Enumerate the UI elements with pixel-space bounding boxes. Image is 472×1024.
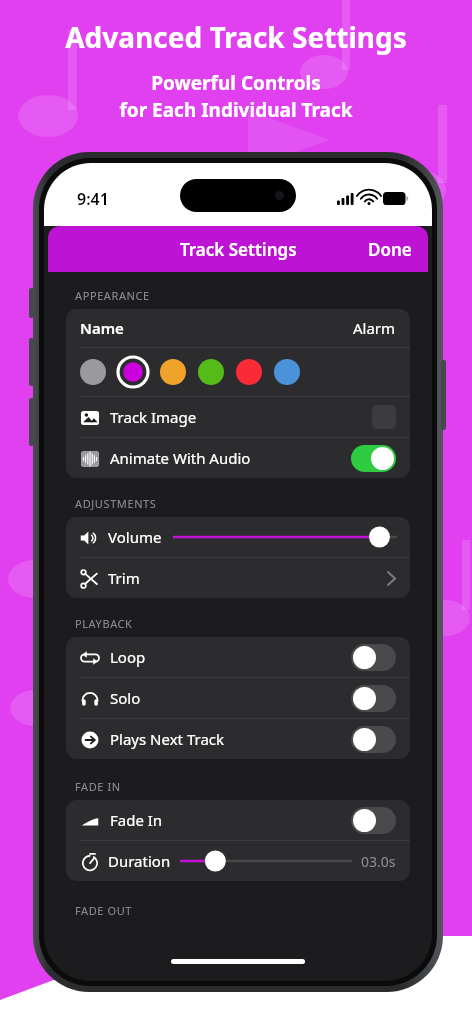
button[interactable]: Toggle bbox=[351, 644, 396, 671]
staticText: Track Settings bbox=[180, 238, 297, 261]
staticText: Name bbox=[80, 318, 124, 338]
staticText: Volume bbox=[108, 527, 162, 547]
button[interactable]: Color bbox=[274, 359, 300, 385]
staticText: APPEARANCE bbox=[75, 288, 150, 303]
button[interactable]: Toggle bbox=[351, 685, 396, 712]
staticText: Alarm bbox=[353, 318, 396, 338]
staticText: Track Image bbox=[110, 407, 197, 427]
button[interactable]: Toggle bbox=[351, 445, 396, 472]
button[interactable]: Color bbox=[198, 359, 224, 385]
staticText: Powerful Controls for Each Individual Tr… bbox=[119, 70, 353, 123]
staticText: Fade In bbox=[110, 810, 163, 830]
button[interactable]: Color bbox=[236, 359, 262, 385]
staticText: ADJUSTMENTS bbox=[75, 496, 157, 511]
button[interactable]: Color bbox=[80, 359, 106, 385]
staticText: Solo bbox=[110, 688, 141, 708]
button[interactable]: Color bbox=[160, 359, 186, 385]
staticText: FADE IN bbox=[75, 779, 121, 794]
staticText: Done bbox=[368, 238, 412, 261]
staticText: PLAYBACK bbox=[75, 616, 133, 631]
button[interactable]: Color bbox=[118, 357, 148, 387]
button[interactable]: Toggle bbox=[351, 807, 396, 834]
staticText: Trim bbox=[108, 568, 140, 588]
staticText: Plays Next Track bbox=[110, 729, 225, 749]
staticText: Animate With Audio bbox=[110, 448, 251, 468]
button[interactable]: Toggle bbox=[351, 726, 396, 753]
button[interactable]: Track Image bbox=[66, 397, 410, 437]
button[interactable]: Done bbox=[352, 228, 428, 271]
button[interactable]: Slider bbox=[174, 524, 396, 550]
button[interactable]: Slider bbox=[181, 848, 351, 874]
button[interactable]: Trim bbox=[66, 558, 410, 598]
staticText: 9:41 bbox=[77, 188, 109, 210]
staticText: Loop bbox=[110, 647, 146, 667]
staticText: Advanced Track Settings bbox=[65, 18, 407, 56]
staticText: FADE OUT bbox=[75, 903, 133, 918]
staticText: Duration bbox=[108, 851, 171, 871]
staticText: 03.0s bbox=[361, 852, 396, 871]
